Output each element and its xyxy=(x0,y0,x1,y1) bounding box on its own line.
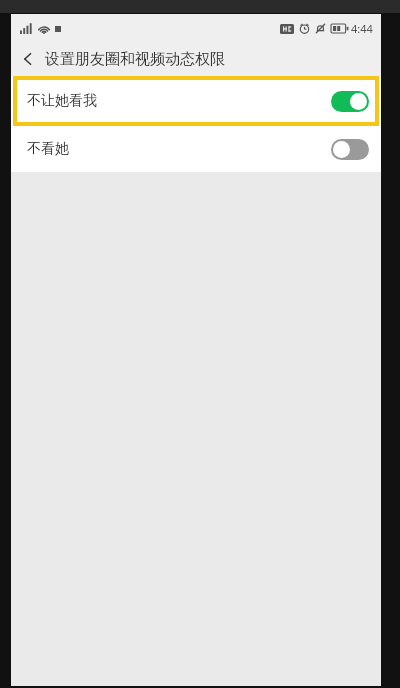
button[interactable]: 不看她 xyxy=(11,126,381,172)
button[interactable]: Off xyxy=(331,139,369,160)
staticText: 4:44 xyxy=(351,21,373,36)
staticText: 不看她 xyxy=(27,140,69,158)
staticText: 不让她看我 xyxy=(27,92,97,110)
button[interactable]: On xyxy=(331,91,369,112)
button[interactable]: 不让她看我 xyxy=(11,76,381,126)
staticText: 设置朋友圈和视频动态权限 xyxy=(45,50,225,69)
button[interactable]: Back xyxy=(11,42,45,76)
